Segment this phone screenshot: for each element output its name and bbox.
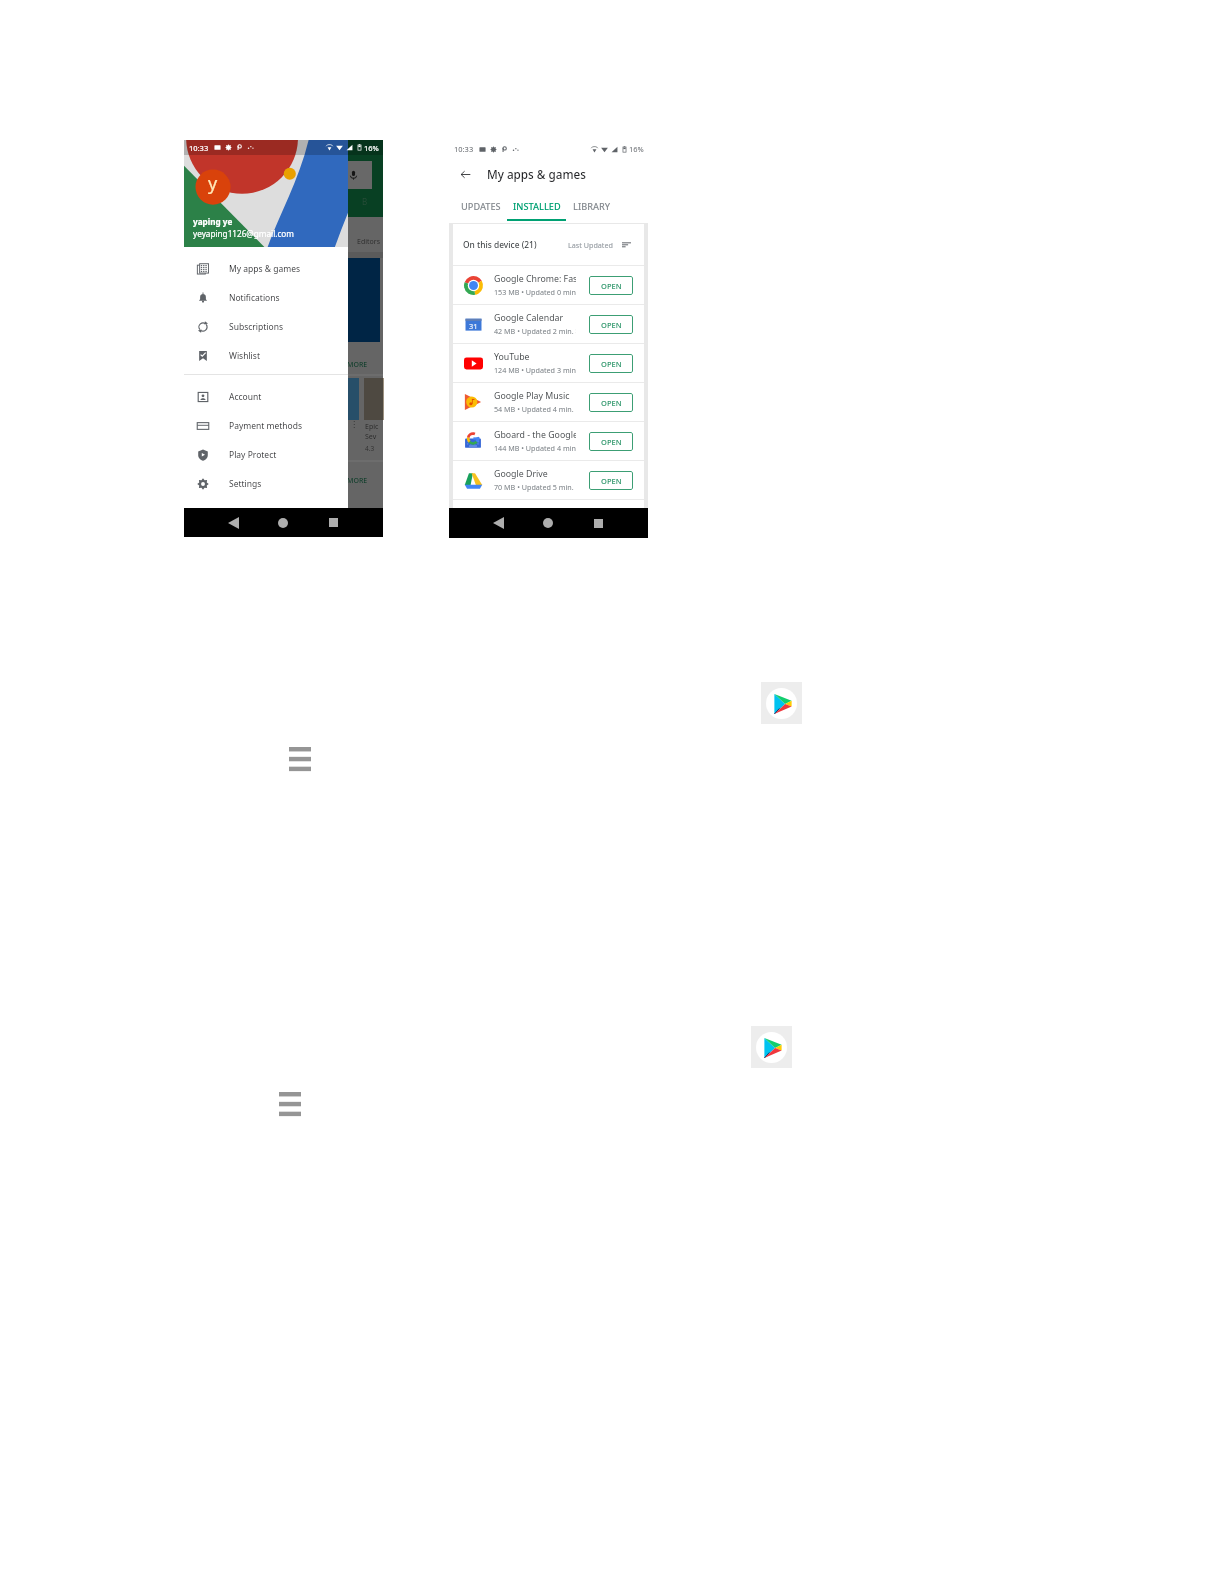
staticText: OPEN bbox=[601, 359, 622, 369]
button[interactable]: Home bbox=[258, 508, 308, 537]
staticText: 70 MB • Updated 5 min. bbox=[494, 482, 574, 492]
staticText: Google Drive bbox=[494, 468, 548, 480]
staticText: OPEN bbox=[601, 437, 622, 447]
staticText: Subscriptions bbox=[229, 321, 283, 333]
staticText: Google Calendar bbox=[494, 312, 564, 324]
staticText: INSTALLED bbox=[513, 200, 561, 213]
staticText: YouTube bbox=[494, 351, 530, 363]
button[interactable]: Wishlist bbox=[184, 341, 348, 370]
button[interactable]: Account bbox=[184, 382, 348, 411]
button[interactable]: YouTube bbox=[453, 344, 644, 382]
button[interactable]: Gboard - the Google K bbox=[453, 422, 644, 460]
staticText: B bbox=[362, 196, 368, 207]
staticText: y bbox=[208, 171, 218, 196]
staticText: 31 bbox=[469, 321, 478, 331]
button[interactable]: OPEN bbox=[589, 393, 633, 412]
button[interactable]: Home bbox=[523, 508, 573, 538]
staticText: 4.3 bbox=[365, 444, 376, 453]
staticText: 124 MB • Updated 3 min bbox=[494, 365, 576, 375]
staticText: MORE bbox=[347, 476, 368, 486]
staticText: Gboard - the Google K bbox=[494, 429, 576, 441]
staticText: Google Play Music bbox=[494, 390, 570, 402]
button[interactable]: OPEN bbox=[589, 315, 633, 334]
button[interactable]: OPEN bbox=[589, 276, 633, 295]
button[interactable]: Google Play Store bbox=[761, 682, 802, 724]
button[interactable]: Back bbox=[473, 508, 523, 538]
button[interactable]: Google Chrome: Fast bbox=[453, 266, 644, 304]
staticText: UPDATES bbox=[461, 200, 501, 213]
staticText: LIBRARY bbox=[573, 200, 611, 213]
button[interactable]: Back bbox=[458, 167, 473, 182]
staticText: Epic bbox=[365, 422, 379, 432]
button[interactable]: Sort bbox=[621, 239, 632, 250]
staticText: 153 MB • Updated 0 min. bbox=[494, 287, 576, 297]
button[interactable]: LIBRARY bbox=[569, 190, 615, 223]
staticText: 16% bbox=[364, 143, 379, 153]
staticText: 10:33 bbox=[454, 144, 474, 154]
staticText: 144 MB • Updated 4 min bbox=[494, 443, 576, 453]
button[interactable]: Play Protect bbox=[184, 440, 348, 469]
button[interactable]: Recent apps bbox=[573, 508, 623, 538]
button[interactable]: Settings bbox=[184, 469, 348, 498]
staticText: 42 MB • Updated 2 min. > bbox=[494, 326, 576, 336]
button[interactable]: 31 bbox=[453, 305, 644, 343]
staticText: OPEN bbox=[601, 320, 622, 330]
button[interactable]: UPDATES bbox=[456, 190, 506, 223]
staticText: 54 MB • Updated 4 min. bbox=[494, 404, 574, 414]
button[interactable]: OPEN bbox=[589, 432, 633, 451]
button[interactable]: My apps & games bbox=[184, 254, 348, 283]
button[interactable]: Payment methods bbox=[184, 411, 348, 440]
staticText: Editors bbox=[357, 237, 381, 247]
staticText: My apps & games bbox=[487, 166, 586, 182]
button[interactable]: Google Play Music bbox=[453, 383, 644, 421]
staticText: OPEN bbox=[601, 398, 622, 408]
staticText: Account bbox=[229, 391, 262, 403]
staticText: yeyaping1126@gmail.com bbox=[193, 228, 294, 239]
button[interactable]: INSTALLED bbox=[507, 190, 566, 223]
button[interactable]: Subscriptions bbox=[184, 312, 348, 341]
staticText: 16% bbox=[629, 144, 644, 154]
staticText: My apps & games bbox=[229, 263, 301, 275]
staticText: Payment methods bbox=[229, 420, 303, 432]
staticText: 10:33 bbox=[189, 143, 209, 153]
staticText: Google Chrome: Fast bbox=[494, 273, 576, 285]
staticText: Settings bbox=[229, 478, 262, 490]
staticText: Sev bbox=[365, 432, 377, 442]
button[interactable]: OPEN bbox=[589, 471, 633, 490]
button[interactable]: Google Drive bbox=[453, 461, 644, 499]
button[interactable]: Back bbox=[208, 508, 258, 537]
staticText: OPEN bbox=[601, 281, 622, 291]
staticText: On this device (21) bbox=[463, 239, 537, 250]
button[interactable]: Notifications bbox=[184, 283, 348, 312]
staticText: Notifications bbox=[229, 292, 280, 304]
button[interactable]: OPEN bbox=[589, 354, 633, 373]
staticText: Play Protect bbox=[229, 449, 277, 461]
staticText: Last Updated bbox=[568, 240, 613, 250]
staticText: Wishlist bbox=[229, 350, 260, 362]
button[interactable]: Recent apps bbox=[308, 508, 358, 537]
button[interactable]: Menu bbox=[289, 747, 311, 771]
staticText: MORE bbox=[347, 360, 368, 370]
button[interactable]: Menu bbox=[279, 1092, 301, 1116]
staticText: yaping ye bbox=[193, 216, 233, 227]
staticText: OPEN bbox=[601, 476, 622, 486]
button[interactable]: Google Play Store bbox=[751, 1026, 792, 1068]
staticText: ⋮ bbox=[350, 420, 358, 429]
